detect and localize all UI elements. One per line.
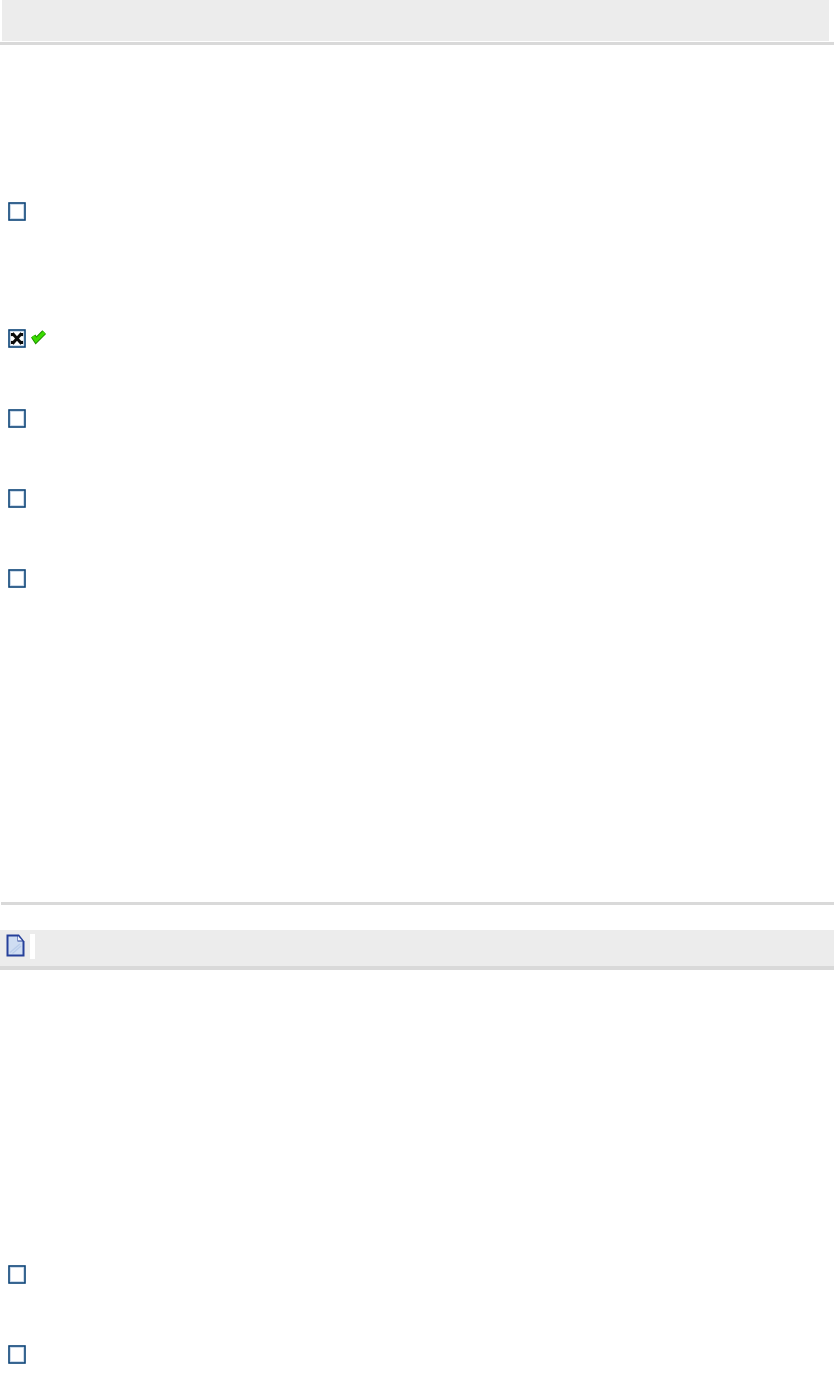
button[interactable]: Checkbox [8,1345,26,1364]
button[interactable]: Status bar [0,930,834,966]
button[interactable]: Checkbox with missing image [8,329,26,348]
button[interactable]: Checkbox [8,1265,26,1284]
button[interactable]: Checkbox [8,202,26,221]
button[interactable]: Document [6,934,25,957]
button[interactable]: Checkbox [8,409,26,428]
button[interactable]: Checkbox [8,569,26,588]
other: Valid [31,330,48,345]
button[interactable]: Checkbox [8,489,26,508]
